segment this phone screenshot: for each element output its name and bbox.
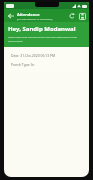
staticText: Hey, Sandip Modanwal	[8, 25, 76, 33]
staticText: Attendance	[17, 12, 40, 17]
button[interactable]: Save	[77, 11, 87, 21]
staticText: Punch In/Out	[8, 40, 23, 43]
staticText: (31-Aug-2020 To 31-Oct-2020 )	[17, 17, 53, 20]
staticText: Please select shift and the time to mark…	[8, 36, 77, 39]
button[interactable]: Date: 31-Oct-2020 06:13 PM	[7, 49, 86, 72]
staticText: Punch Type: In	[11, 62, 35, 67]
staticText: Date: 31-Oct-2020 06:13 PM	[11, 53, 56, 58]
button[interactable]: Back	[6, 11, 16, 21]
button[interactable]: Refresh	[67, 11, 77, 21]
